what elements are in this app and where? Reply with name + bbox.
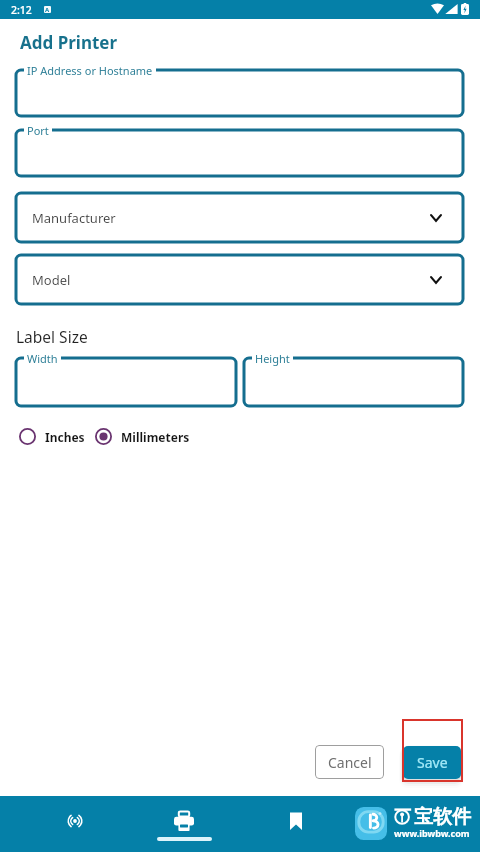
button[interactable]: Millimeters bbox=[91, 423, 194, 450]
staticText: Manufacturer bbox=[32, 209, 116, 227]
staticText: Height bbox=[255, 351, 290, 366]
button[interactable]: Cancel bbox=[315, 745, 384, 779]
staticText: www.ibwbw.com bbox=[394, 827, 470, 839]
staticText: Width bbox=[27, 351, 58, 366]
staticText: Save bbox=[417, 753, 448, 772]
button[interactable]: Save bbox=[403, 746, 461, 779]
button[interactable]: Printers bbox=[129, 796, 239, 852]
button[interactable]: Manufacturer bbox=[16, 193, 463, 242]
button[interactable]: Inches bbox=[15, 423, 89, 450]
button[interactable]: Width bbox=[16, 358, 236, 406]
staticText: Port bbox=[27, 123, 49, 138]
button[interactable]: More bbox=[350, 796, 460, 852]
staticText: 2:12 bbox=[11, 3, 32, 17]
button[interactable]: Discover printers bbox=[20, 796, 130, 852]
staticText: Add Printer bbox=[20, 31, 118, 54]
staticText: Label Size bbox=[16, 326, 88, 347]
button[interactable]: Height bbox=[244, 358, 463, 406]
staticText: IP Address or Hostname bbox=[27, 63, 153, 78]
staticText: Millimeters bbox=[121, 429, 190, 445]
button[interactable]: Port bbox=[16, 130, 463, 176]
button[interactable]: Saved bbox=[241, 796, 351, 852]
button[interactable]: Model bbox=[16, 255, 463, 304]
staticText: Inches bbox=[45, 429, 85, 445]
staticText: Cancel bbox=[328, 753, 372, 772]
staticText: 宝软件 bbox=[414, 805, 471, 829]
staticText: Model bbox=[32, 271, 71, 289]
staticText: A bbox=[45, 6, 50, 13]
button[interactable]: IP Address or Hostname bbox=[16, 70, 463, 116]
